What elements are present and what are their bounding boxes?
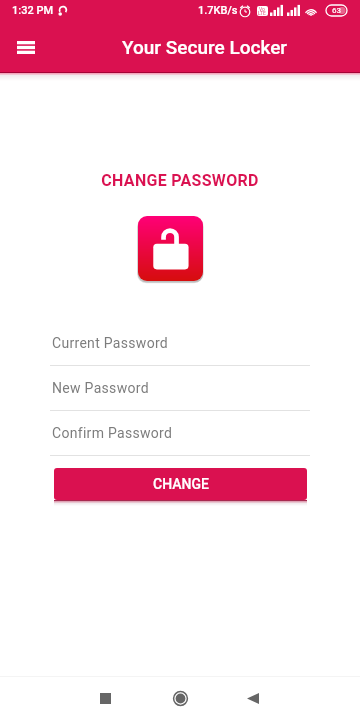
staticText: 1:32 PM (12, 4, 54, 17)
staticText: New Password (52, 380, 149, 396)
button[interactable]: CHANGE (54, 468, 307, 500)
staticText: Vo (259, 6, 265, 12)
button[interactable]: Open navigation menu (6, 27, 46, 67)
button[interactable]: Confirm Password (50, 425, 310, 456)
staticText: LTE (258, 10, 266, 16)
staticText: Confirm Password (52, 425, 173, 441)
button[interactable]: Current Password (50, 335, 310, 366)
button[interactable]: Back (229, 676, 277, 720)
button[interactable]: Recent apps (81, 676, 129, 720)
staticText: CHANGE (153, 476, 209, 492)
staticText: 63 (332, 6, 341, 15)
button[interactable]: Home (156, 676, 204, 720)
staticText: Current Password (52, 335, 169, 351)
staticText: Your Secure Locker (122, 36, 288, 58)
staticText: CHANGE PASSWORD (0, 171, 360, 190)
button[interactable]: New Password (50, 380, 310, 411)
staticText: 1.7KB/s (198, 4, 238, 17)
